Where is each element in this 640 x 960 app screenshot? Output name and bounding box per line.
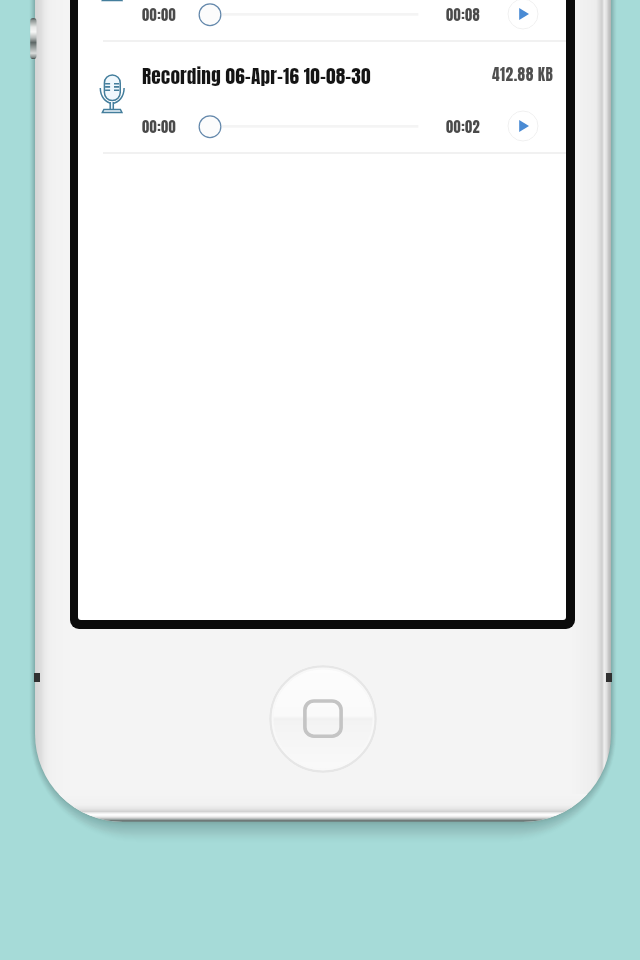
button[interactable]: Play [507,110,539,142]
staticText: 00:02 [446,116,481,138]
button[interactable]: Recording 06-Apr-16 10-08-30 [78,42,566,154]
button[interactable]: Play [507,0,539,30]
staticText: 412.88 KB [492,63,554,86]
staticText: 00:00 [142,4,177,26]
staticText: 00:00 [142,116,177,138]
button[interactable]: Home [269,665,377,773]
button[interactable]: Recording 06-Apr-16 10-08-30 [78,0,566,42]
staticText: Recording 06-Apr-16 10-08-30 [142,61,371,90]
staticText: 00:08 [446,4,481,26]
